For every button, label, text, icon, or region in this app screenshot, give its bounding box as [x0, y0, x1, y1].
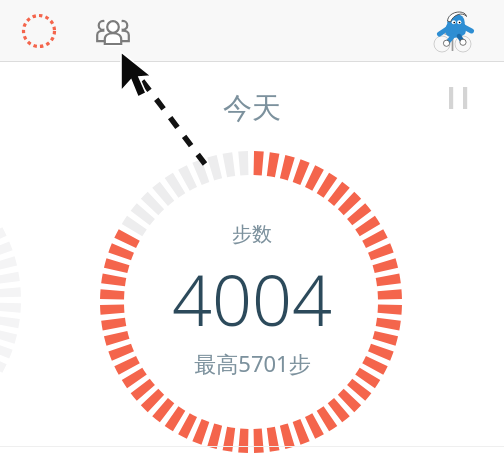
staticText: 步数 [232, 222, 272, 247]
staticText: 4004 [172, 251, 332, 346]
button[interactable]: Pause [436, 76, 480, 120]
button[interactable]: Activity rings [17, 9, 61, 53]
staticText: 最高5701步 [194, 348, 311, 378]
button[interactable]: Friends [89, 8, 137, 56]
staticText: 今天 [223, 90, 281, 127]
button[interactable]: Profile [425, 3, 481, 59]
